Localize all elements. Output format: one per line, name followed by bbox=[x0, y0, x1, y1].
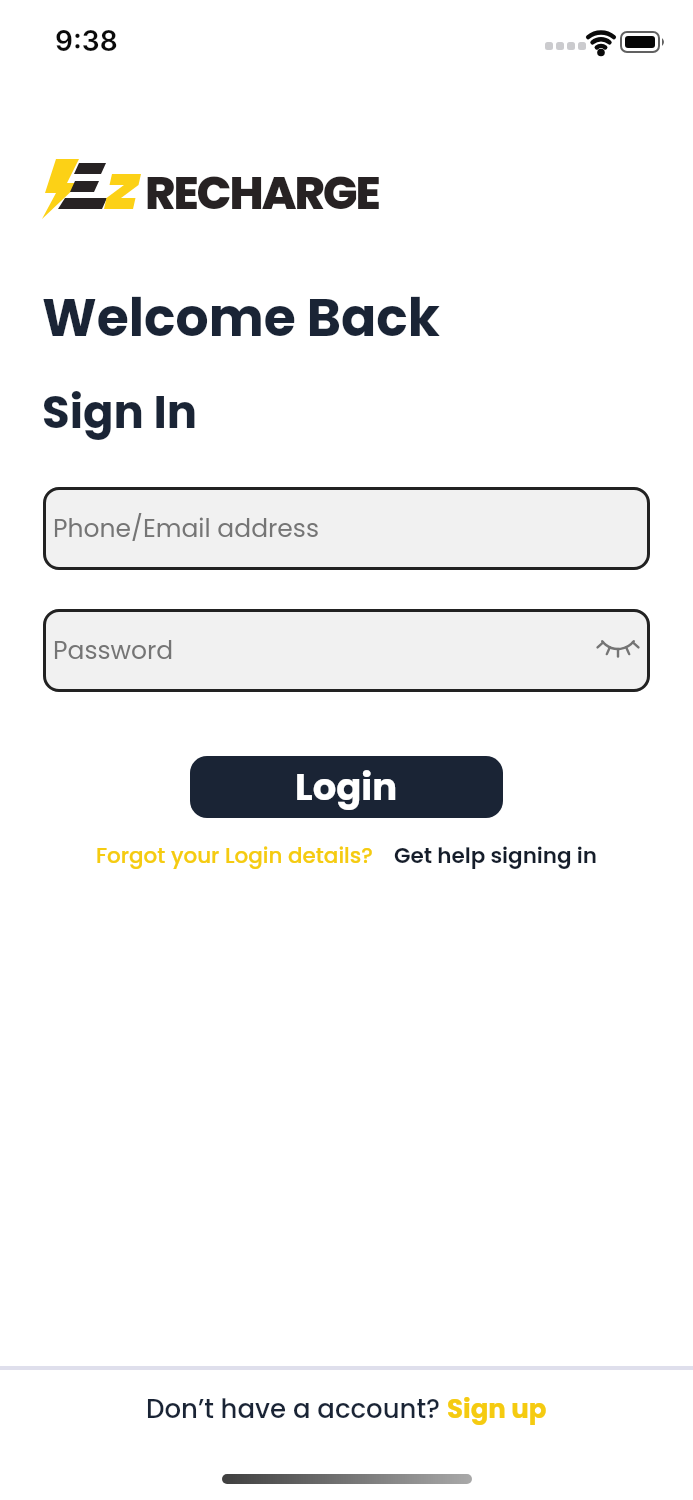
staticText: Phone/Email address bbox=[53, 511, 319, 546]
button[interactable]: Forgot your Login details? bbox=[96, 840, 373, 870]
button[interactable]: Don’t have a account? bbox=[0, 1391, 693, 1427]
staticText: Welcome Back bbox=[42, 281, 440, 354]
staticText: Sign up bbox=[447, 1391, 547, 1427]
button[interactable]: Get help signing in bbox=[394, 840, 597, 870]
button[interactable]: Phone/Email address bbox=[43, 487, 650, 570]
staticText: Don’t have a account? bbox=[146, 1391, 447, 1427]
staticText: 9:38 bbox=[55, 24, 118, 58]
staticText: Sign In bbox=[42, 381, 197, 444]
staticText: Login bbox=[295, 761, 398, 813]
staticText: Password bbox=[53, 633, 174, 668]
staticText: RECHARGE bbox=[145, 161, 379, 225]
button[interactable]: Login bbox=[190, 756, 503, 818]
button[interactable]: Password bbox=[43, 609, 650, 692]
button[interactable] bbox=[598, 631, 638, 671]
